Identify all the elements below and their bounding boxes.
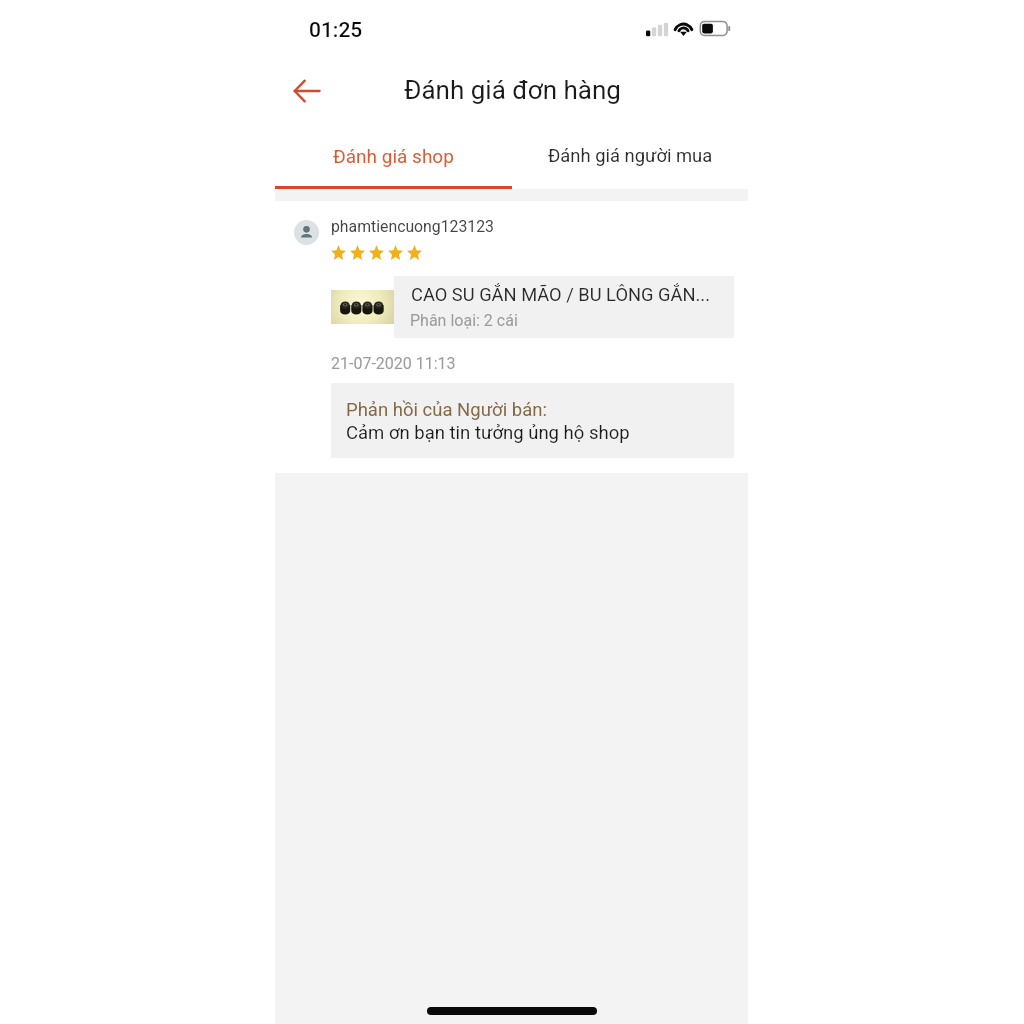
staticText: Phản hồi của Người bán: xyxy=(346,399,547,421)
staticText: Đánh giá người mua xyxy=(548,145,713,167)
staticText: 01:25 xyxy=(309,18,363,43)
staticText: 21-07-2020 11:13 xyxy=(331,354,456,373)
button[interactable]: Đánh giá shop xyxy=(275,129,512,182)
staticText: Phân loại: 2 cái xyxy=(410,311,518,330)
button[interactable] xyxy=(331,276,734,338)
staticText: Đánh giá đơn hàng xyxy=(404,75,621,105)
staticText: CAO SU GẮN MÃO / BU LÔNG GẮN... xyxy=(411,284,710,305)
button[interactable]: Đánh giá người mua xyxy=(512,129,748,182)
staticText: phamtiencuong123123 xyxy=(331,217,494,236)
button[interactable]: Back xyxy=(285,69,329,113)
staticText: Cảm ơn bạn tin tưởng ủng hộ shop xyxy=(346,422,630,444)
staticText: Đánh giá shop xyxy=(333,145,454,167)
